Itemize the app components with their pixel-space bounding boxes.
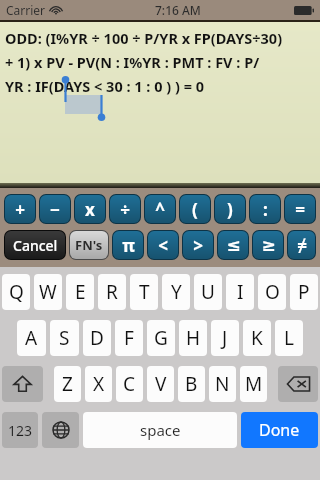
staticText: ÷ xyxy=(120,198,130,221)
staticText: ≠ xyxy=(297,234,307,257)
button[interactable]: C xyxy=(116,366,143,402)
staticText: S xyxy=(59,325,70,351)
staticText: L xyxy=(284,325,294,351)
staticText: Cancel xyxy=(13,236,58,255)
button[interactable]: E xyxy=(66,274,94,310)
button[interactable]: − xyxy=(40,195,70,223)
staticText: FN's xyxy=(75,236,103,254)
button[interactable]: D xyxy=(83,320,111,356)
staticText: 7:16 AM xyxy=(155,2,201,18)
staticText: ≥ xyxy=(261,235,276,255)
button[interactable]: K xyxy=(243,320,271,356)
staticText: Z xyxy=(62,371,73,397)
button[interactable]: Change keyboard xyxy=(42,412,79,448)
staticText: − xyxy=(50,198,60,221)
staticText: W xyxy=(39,279,57,305)
button[interactable]: H xyxy=(179,320,207,356)
button[interactable]: B xyxy=(178,366,205,402)
staticText: R xyxy=(106,279,118,305)
staticText: ^ xyxy=(155,198,165,221)
button[interactable]: Backspace xyxy=(278,366,318,402)
staticText: O xyxy=(265,279,280,305)
button[interactable]: X xyxy=(85,366,112,402)
staticText: M xyxy=(245,371,263,397)
staticText: N xyxy=(215,371,230,397)
button[interactable]: N xyxy=(209,366,236,402)
staticText: + 1) x PV - PV(N : I%YR : PMT : FV : P/ xyxy=(5,52,260,72)
staticText: > xyxy=(193,234,203,257)
button[interactable]: A xyxy=(17,320,46,356)
staticText: I xyxy=(237,279,244,305)
staticText: E xyxy=(75,279,86,305)
button[interactable]: ( xyxy=(180,195,210,223)
button[interactable]: T xyxy=(130,274,158,310)
button[interactable]: ) xyxy=(215,195,245,223)
staticText: B xyxy=(185,371,198,397)
button[interactable]: Shift xyxy=(2,366,43,402)
button[interactable]: Q xyxy=(2,274,30,310)
button[interactable]: R xyxy=(98,274,126,310)
button[interactable]: < xyxy=(148,231,178,259)
staticText: ) xyxy=(227,198,233,221)
staticText: 123 xyxy=(8,421,33,440)
staticText: C xyxy=(123,371,136,397)
staticText: space xyxy=(140,420,181,440)
staticText: G xyxy=(154,325,168,351)
staticText: ≤ xyxy=(226,235,241,255)
staticText: Q xyxy=(9,279,24,305)
staticText: U xyxy=(201,279,215,305)
button[interactable]: ≠ xyxy=(288,231,315,259)
staticText: Done xyxy=(259,419,300,441)
button[interactable]: ≤ xyxy=(218,231,248,259)
staticText: P xyxy=(298,279,310,305)
staticText: V xyxy=(155,371,167,397)
button[interactable]: 123 xyxy=(2,412,38,448)
staticText: : xyxy=(263,198,268,221)
button[interactable]: L xyxy=(275,320,303,356)
button[interactable]: : xyxy=(250,195,280,223)
button[interactable]: space xyxy=(83,412,237,448)
button[interactable]: ≥ xyxy=(253,231,283,259)
staticText: ( xyxy=(192,198,198,221)
staticText: H xyxy=(186,325,201,351)
button[interactable]: F xyxy=(115,320,143,356)
button[interactable]: > xyxy=(183,231,213,259)
button[interactable]: + xyxy=(5,195,35,223)
staticText: A xyxy=(25,325,38,351)
button[interactable]: Cancel xyxy=(5,231,65,259)
staticText: J xyxy=(222,325,228,351)
staticText: Carrier xyxy=(6,2,46,18)
staticText: F xyxy=(124,325,134,351)
button[interactable]: U xyxy=(194,274,222,310)
staticText: + xyxy=(15,198,25,221)
button[interactable]: M xyxy=(240,366,267,402)
button[interactable]: G xyxy=(147,320,175,356)
staticText: D xyxy=(90,325,104,351)
button[interactable]: ÷ xyxy=(110,195,140,223)
button[interactable]: ^ xyxy=(145,195,175,223)
staticText: ODD: (I%YR ÷ 100 ÷ P/YR x FP(DAYS÷30) xyxy=(5,28,283,48)
staticText: x xyxy=(85,198,95,221)
button[interactable]: Done xyxy=(241,412,318,448)
staticText: < xyxy=(158,234,168,257)
button[interactable]: P xyxy=(290,274,318,310)
button[interactable]: x xyxy=(75,195,105,223)
button[interactable]: π xyxy=(113,231,143,259)
button[interactable]: Z xyxy=(54,366,81,402)
button[interactable]: = xyxy=(285,195,315,223)
button[interactable]: O xyxy=(258,274,286,310)
staticText: K xyxy=(251,325,263,351)
button[interactable]: V xyxy=(147,366,174,402)
button[interactable]: J xyxy=(211,320,239,356)
button[interactable]: Y xyxy=(162,274,190,310)
staticText: YR : IF(DAYS < 30 : 1 : 0 ) ) = 0 xyxy=(5,76,205,96)
staticText: Y xyxy=(171,279,182,305)
staticText: = xyxy=(295,198,305,221)
staticText: π xyxy=(122,234,135,257)
staticText: T xyxy=(139,279,150,305)
button[interactable]: I xyxy=(226,274,254,310)
button[interactable]: W xyxy=(34,274,62,310)
button[interactable]: S xyxy=(50,320,79,356)
button[interactable]: FN's xyxy=(70,231,108,259)
staticText: X xyxy=(93,371,105,397)
